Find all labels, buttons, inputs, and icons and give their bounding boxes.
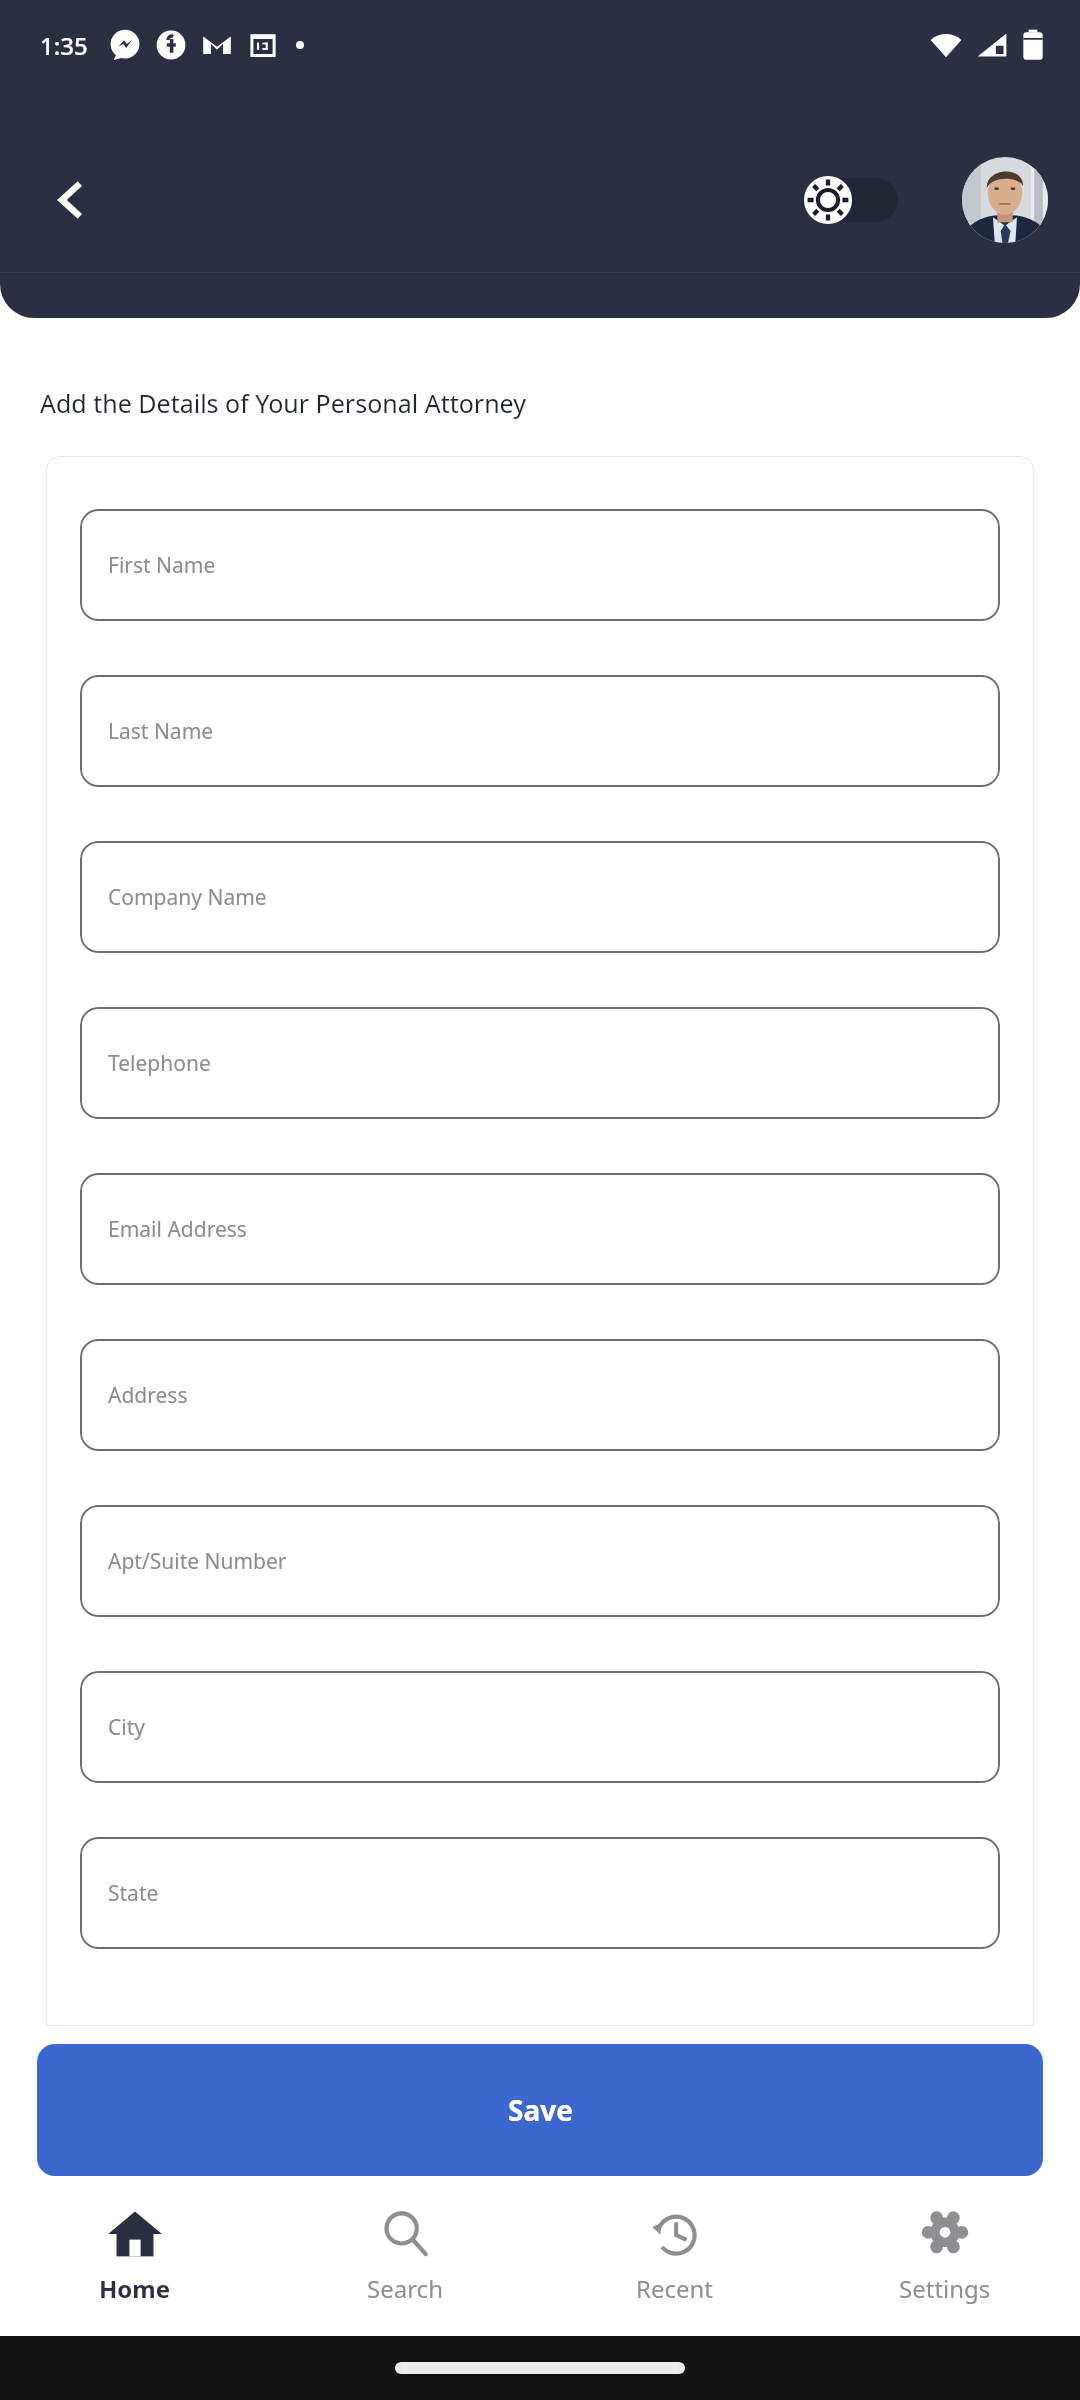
staticText: Home xyxy=(99,2272,171,2305)
button[interactable]: State xyxy=(80,1837,1000,1949)
button[interactable]: Apt/Suite Number xyxy=(80,1505,1000,1617)
button[interactable]: Email Address xyxy=(80,1173,1000,1285)
staticText: 1:35 xyxy=(40,29,88,62)
staticText: Last Name xyxy=(108,717,214,746)
button[interactable]: Recent xyxy=(540,2190,810,2336)
staticText: Add the Details of Your Personal Attorne… xyxy=(40,386,526,420)
button[interactable]: Profile xyxy=(962,157,1048,243)
staticText: State xyxy=(108,1879,159,1908)
staticText: Save xyxy=(508,2091,573,2129)
button[interactable]: Home xyxy=(0,2190,270,2336)
staticText: Telephone xyxy=(108,1049,211,1078)
button[interactable]: Back xyxy=(28,158,112,242)
button[interactable]: Search xyxy=(270,2190,540,2336)
button[interactable]: City xyxy=(80,1671,1000,1783)
staticText: Search xyxy=(367,2272,443,2305)
staticText: Company Name xyxy=(108,883,267,912)
button[interactable]: Last Name xyxy=(80,675,1000,787)
button[interactable]: First Name xyxy=(80,509,1000,621)
button[interactable]: Address xyxy=(80,1339,1000,1451)
button[interactable]: Telephone xyxy=(80,1007,1000,1119)
button[interactable]: Toggle theme xyxy=(804,172,904,228)
staticText: Address xyxy=(108,1381,188,1410)
button[interactable]: Settings xyxy=(810,2190,1080,2336)
staticText: Settings xyxy=(899,2272,991,2305)
staticText: Apt/Suite Number xyxy=(108,1547,287,1576)
staticText: First Name xyxy=(108,551,216,580)
staticText: Email Address xyxy=(108,1215,247,1244)
staticText: City xyxy=(108,1713,145,1742)
staticText: Recent xyxy=(636,2272,714,2305)
button[interactable]: Company Name xyxy=(80,841,1000,953)
button[interactable]: Save xyxy=(37,2044,1043,2176)
